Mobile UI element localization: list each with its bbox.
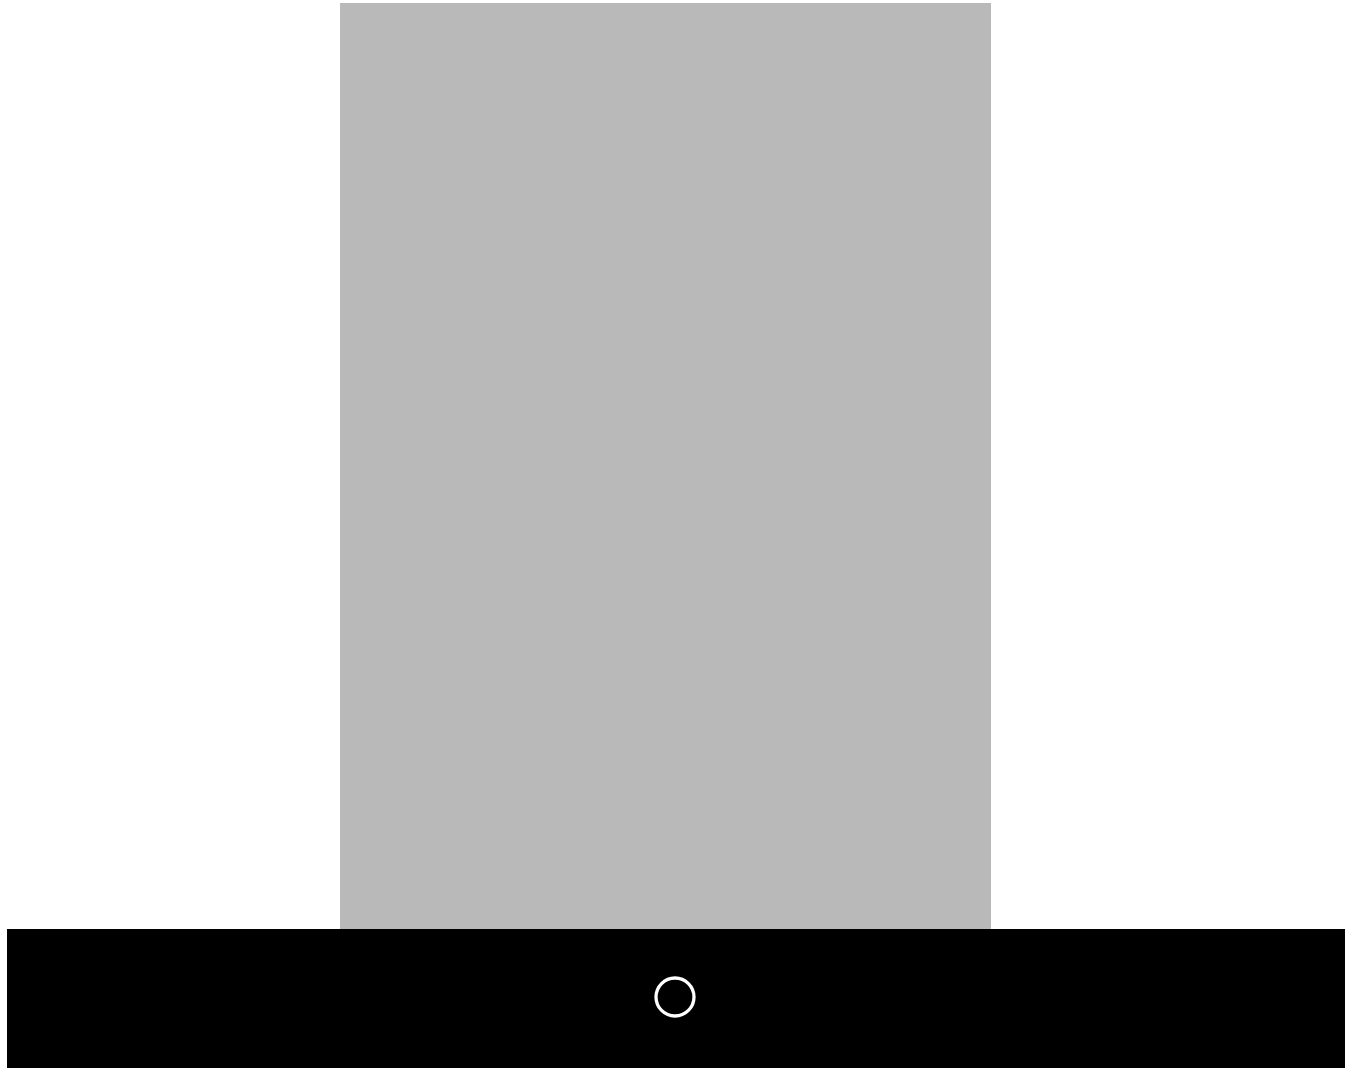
button[interactable]: Home <box>639 961 711 1033</box>
